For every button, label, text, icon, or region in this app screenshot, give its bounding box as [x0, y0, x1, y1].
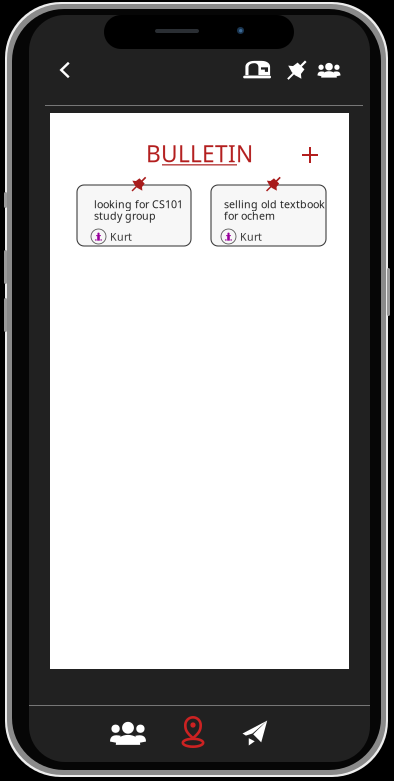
button[interactable]: People: [100, 705, 156, 761]
staticText: study group: [94, 208, 156, 223]
button[interactable]: looking for CS101: [77, 185, 191, 246]
button[interactable]: Members: [314, 51, 344, 89]
staticText: for ochem: [224, 208, 275, 223]
staticText: looking for CS101: [94, 197, 183, 211]
button[interactable]: Messages: [227, 705, 283, 761]
staticText: BULLETIN: [146, 138, 253, 168]
staticText: selling old textbook: [224, 197, 325, 211]
button[interactable]: New post: [291, 136, 329, 174]
button[interactable]: Map: [165, 704, 221, 760]
button[interactable]: selling old textbook: [211, 185, 326, 246]
staticText: Kurt: [110, 229, 132, 244]
staticText: Kurt: [240, 229, 262, 244]
button[interactable]: Pinned posts: [282, 51, 312, 89]
button[interactable]: Mailbox: [241, 51, 275, 89]
button[interactable]: Back: [47, 48, 83, 92]
